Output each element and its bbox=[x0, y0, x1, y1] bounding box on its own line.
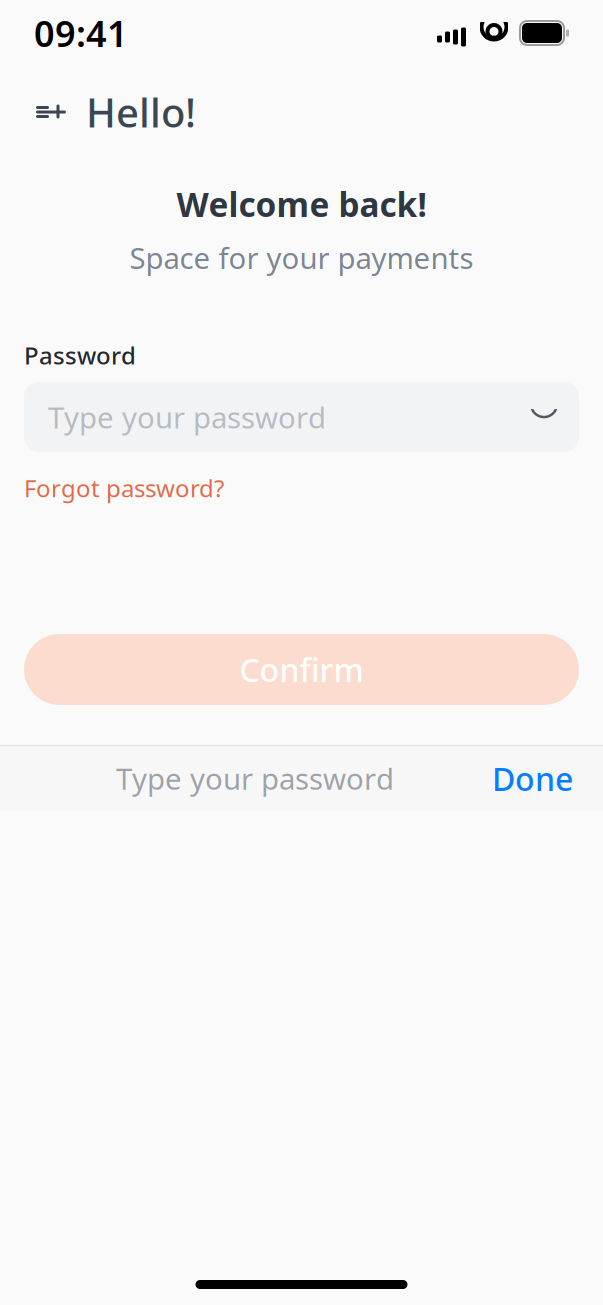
staticText: Password bbox=[24, 339, 136, 371]
staticText: Forgot password? bbox=[24, 472, 224, 504]
button[interactable]: Done bbox=[486, 749, 579, 808]
staticText: Confirm bbox=[239, 648, 363, 691]
button[interactable]: Show password bbox=[521, 394, 567, 440]
staticText: 09:41 bbox=[34, 9, 128, 57]
staticText: Hello! bbox=[86, 85, 196, 138]
staticText: Space for your payments bbox=[129, 238, 473, 277]
button[interactable]: Back bbox=[24, 88, 78, 136]
staticText: Type your password bbox=[48, 398, 326, 437]
staticText: Done bbox=[492, 757, 573, 800]
staticText: Type your password bbox=[116, 759, 394, 798]
button[interactable]: Forgot password? bbox=[24, 466, 224, 510]
button[interactable]: Confirm bbox=[24, 634, 579, 705]
staticText: Welcome back! bbox=[176, 182, 426, 226]
